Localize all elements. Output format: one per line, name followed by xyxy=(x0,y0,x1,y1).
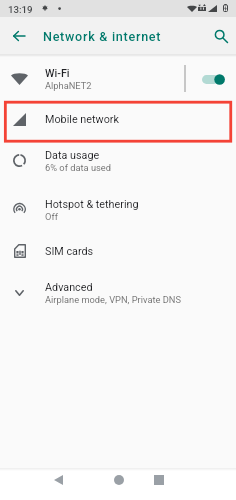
button[interactable]: Search xyxy=(207,22,235,50)
staticText: AlphaNET2 xyxy=(45,80,92,91)
button[interactable]: Navigate up xyxy=(5,22,33,50)
button[interactable]: Home xyxy=(102,468,135,491)
button[interactable]: Wi-Fi on xyxy=(197,64,229,94)
staticText: Off xyxy=(45,211,58,222)
staticText: Hotspot & tethering xyxy=(45,198,139,211)
button[interactable]: Recent apps xyxy=(142,468,175,491)
staticText: 13:19 xyxy=(8,4,33,15)
button[interactable]: Mobile network xyxy=(0,103,236,136)
staticText: Network & internet xyxy=(43,29,162,44)
button[interactable]: SIM cards xyxy=(0,234,236,268)
staticText: Data usage xyxy=(45,149,100,162)
staticText: Mobile network xyxy=(45,113,119,126)
button[interactable]: Data usage xyxy=(0,136,236,185)
button[interactable]: Hotspot & tethering xyxy=(0,185,236,234)
staticText: Wi-Fi xyxy=(45,67,70,80)
staticText: Airplane mode, VPN, Private DNS xyxy=(45,294,181,305)
button[interactable]: Wi-Fi xyxy=(0,54,236,103)
staticText: Advanced xyxy=(45,281,93,294)
button[interactable]: Advanced xyxy=(0,268,236,317)
staticText: SIM cards xyxy=(45,245,94,258)
staticText: 6% of data used xyxy=(45,162,111,173)
button[interactable]: Back xyxy=(42,468,75,491)
